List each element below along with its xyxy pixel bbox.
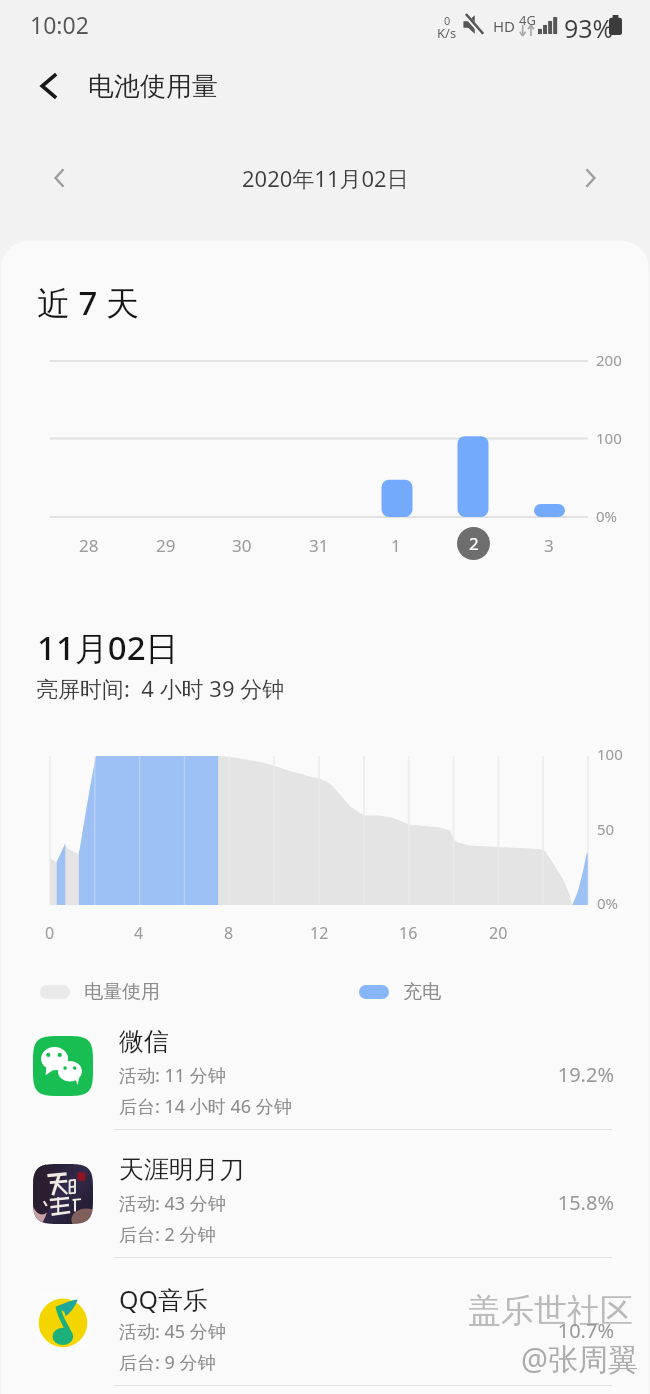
staticText: 亮屏时间: 4 小时 39 分钟 [36, 673, 285, 703]
staticText: 0 [444, 13, 451, 28]
staticText: 15.8% [500, 1189, 614, 1216]
staticText: 0 [45, 922, 55, 944]
staticText: 19.2% [500, 1061, 614, 1088]
staticText: 29 [156, 534, 176, 557]
staticText: 活动: 45 分钟 [119, 1319, 226, 1344]
staticText: 20 [489, 922, 508, 944]
staticText: 后台: 9 分钟 [119, 1350, 216, 1375]
staticText: 活动: 43 分钟 [119, 1191, 226, 1216]
staticText: 31 [309, 534, 329, 557]
staticText: 12 [310, 922, 329, 944]
staticText: HD [493, 16, 516, 36]
button[interactable]: 天涯明月刀 [0, 1142, 650, 1270]
staticText: QQ音乐 [119, 1282, 209, 1316]
staticText: 0% [597, 893, 619, 913]
staticText: 天涯明月刀 [119, 1154, 244, 1185]
staticText: 4 [134, 922, 144, 944]
staticText: 10.7% [500, 1317, 614, 1344]
staticText: 4G [519, 11, 536, 29]
staticText: 93% [564, 11, 614, 45]
staticText: 28 [79, 534, 99, 557]
staticText: 200 [596, 350, 622, 370]
button[interactable]: Next day [568, 156, 612, 200]
staticText: 2020年11月02日 [242, 163, 409, 193]
staticText: @张周翼 [521, 1338, 638, 1379]
staticText: 盖乐世社区 [468, 1290, 633, 1332]
staticText: 100 [597, 744, 623, 764]
staticText: 微信 [119, 1026, 169, 1057]
staticText: 11月02日 [37, 625, 179, 670]
staticText: K/s [437, 24, 457, 42]
staticText: 活动: 11 分钟 [119, 1063, 226, 1088]
staticText: 100 [596, 428, 622, 448]
button[interactable]: Previous day [38, 156, 82, 200]
staticText: 电池使用量 [88, 70, 218, 103]
staticText: 10:02 [30, 9, 89, 40]
button[interactable]: Back [26, 62, 74, 110]
staticText: 1 [391, 534, 401, 557]
staticText: 3 [544, 534, 554, 557]
button[interactable]: QQ音乐 [0, 1270, 650, 1394]
staticText: 0% [596, 506, 618, 526]
staticText: 8 [224, 922, 234, 944]
staticText: 后台: 2 分钟 [119, 1222, 216, 1247]
staticText: 后台: 14 小时 46 分钟 [119, 1094, 292, 1119]
staticText: 30 [232, 534, 252, 557]
staticText: 16 [399, 922, 418, 944]
staticText: 电量使用 [84, 980, 160, 1004]
staticText: 近 7 天 [37, 280, 140, 325]
button[interactable]: 微信 [0, 1014, 650, 1142]
staticText: 充电 [403, 980, 441, 1004]
staticText: 2 [469, 532, 479, 555]
staticText: 50 [597, 819, 615, 839]
